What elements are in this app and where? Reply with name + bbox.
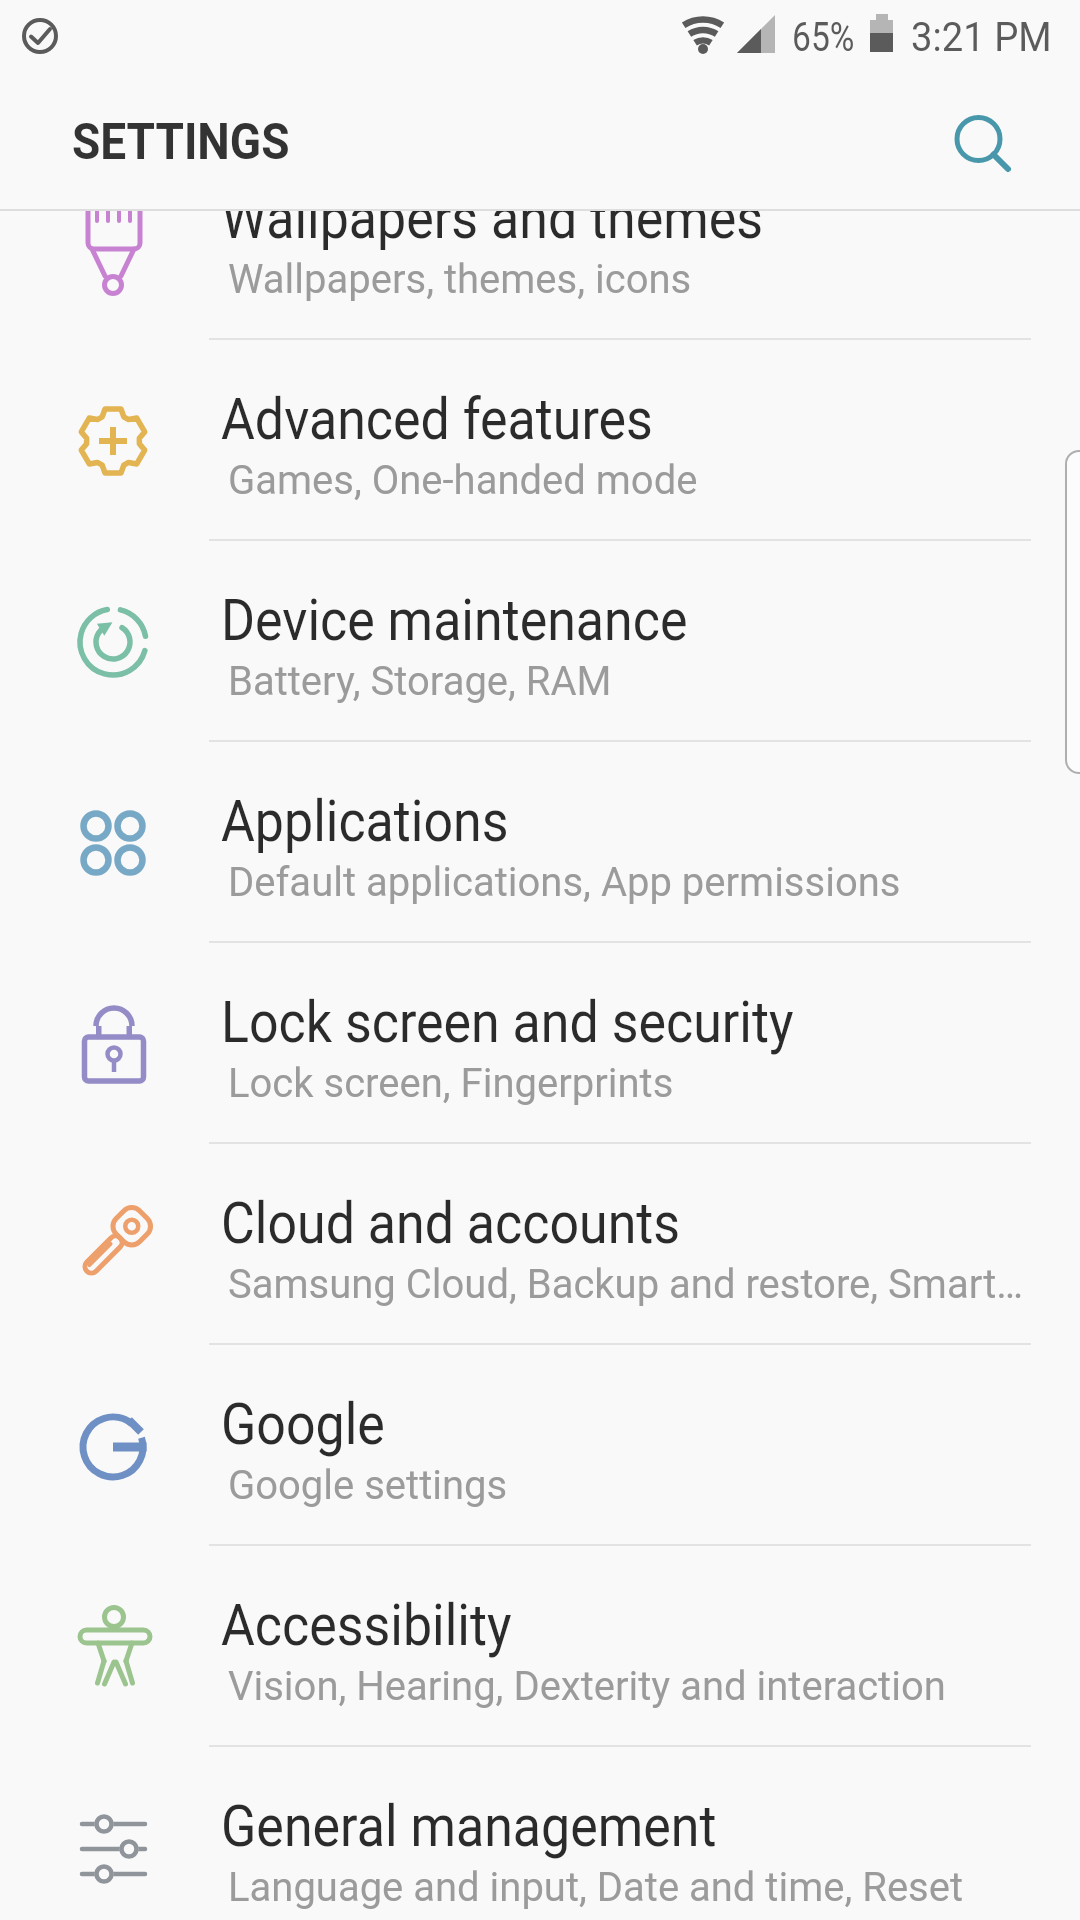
- staticText: Default applications, App permissions: [228, 859, 901, 906]
- staticText: Games, One-handed mode: [228, 457, 698, 504]
- button[interactable]: Accessibility: [0, 1546, 1080, 1747]
- button[interactable]: [946, 106, 1018, 178]
- staticText: Battery, Storage, RAM: [228, 658, 612, 705]
- staticText: Wallpapers, themes, icons: [228, 256, 692, 303]
- button[interactable]: Device maintenance: [0, 541, 1080, 742]
- staticText: 3:21 PM: [911, 14, 1052, 61]
- button[interactable]: Advanced features: [0, 340, 1080, 541]
- staticText: Cloud and accounts: [221, 1189, 680, 1257]
- staticText: Applications: [221, 787, 509, 855]
- staticText: Google settings: [228, 1462, 508, 1509]
- staticText: Wallpapers and themes: [221, 184, 763, 252]
- button[interactable]: Applications: [0, 742, 1080, 943]
- staticText: Lock screen, Fingerprints: [228, 1060, 674, 1107]
- button[interactable]: Cloud and accounts: [0, 1144, 1080, 1345]
- button[interactable]: Wallpapers and themes: [0, 139, 1080, 340]
- staticText: SETTINGS: [72, 113, 290, 172]
- button[interactable]: Google: [0, 1345, 1080, 1546]
- staticText: Lock screen and security: [221, 988, 794, 1056]
- staticText: Google: [221, 1390, 386, 1458]
- staticText: Vision, Hearing, Dexterity and interacti…: [228, 1663, 946, 1710]
- staticText: General management: [221, 1792, 717, 1860]
- staticText: 65%: [792, 14, 855, 61]
- staticText: Samsung Cloud, Backup and restore, Smart…: [228, 1261, 1024, 1308]
- staticText: Advanced features: [221, 385, 653, 453]
- button[interactable]: General management: [0, 1747, 1080, 1920]
- button[interactable]: Lock screen and security: [0, 943, 1080, 1144]
- staticText: Language and input, Date and time, Reset: [228, 1864, 964, 1911]
- staticText: Accessibility: [221, 1591, 512, 1659]
- staticText: Device maintenance: [221, 586, 688, 654]
